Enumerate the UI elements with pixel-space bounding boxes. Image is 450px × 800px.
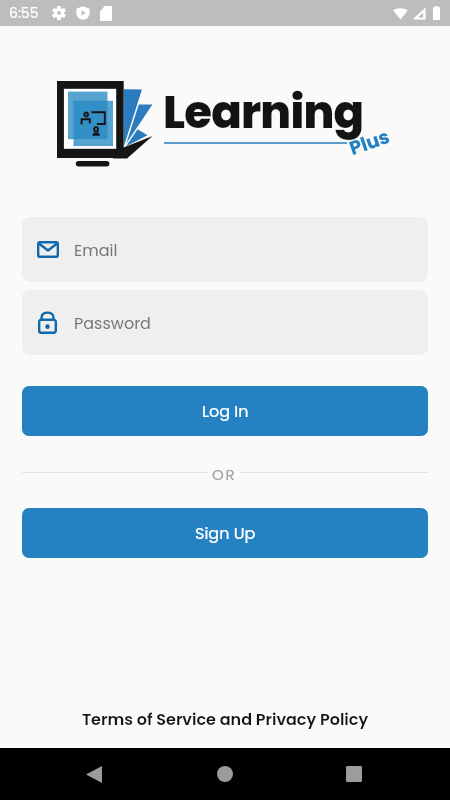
button[interactable]: Home (187, 748, 263, 800)
button[interactable]: Password (22, 290, 428, 355)
button[interactable]: Terms of Service and Privacy Policy (0, 708, 450, 730)
button[interactable]: Recent apps (316, 748, 392, 800)
staticText: Email (74, 239, 118, 261)
button[interactable]: Back (56, 748, 132, 800)
staticText: Log In (202, 400, 249, 422)
button[interactable]: Sign Up (22, 508, 428, 558)
staticText: OR (212, 464, 237, 480)
staticText: Learning (163, 81, 364, 144)
button[interactable]: Email (22, 217, 428, 282)
staticText: Plus (346, 123, 393, 162)
staticText: Sign Up (195, 522, 256, 544)
button[interactable]: Log In (22, 386, 428, 436)
staticText: Password (74, 312, 151, 334)
staticText: 6:55 (9, 3, 39, 23)
